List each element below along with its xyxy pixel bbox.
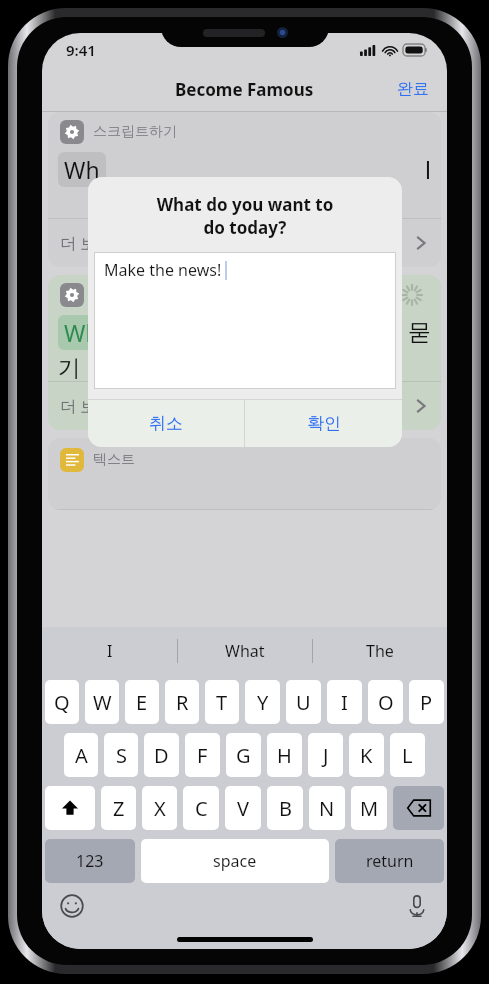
- staticText: 9:41: [66, 40, 96, 60]
- staticText: Wh: [64, 154, 100, 185]
- staticText: I: [341, 689, 348, 716]
- button[interactable]: S: [104, 733, 138, 777]
- staticText: K: [360, 742, 373, 769]
- button[interactable]: J: [308, 733, 343, 777]
- button[interactable]: H: [267, 733, 302, 777]
- staticText: 더 보기: [60, 232, 113, 254]
- staticText: F: [197, 742, 208, 769]
- button[interactable]: G: [226, 733, 261, 777]
- staticText: 확인: [307, 413, 341, 434]
- button[interactable]: Backspace: [393, 786, 444, 830]
- staticText: 완료: [397, 79, 429, 99]
- staticText: 더 보기: [60, 395, 113, 417]
- button[interactable]: F: [185, 733, 220, 777]
- staticText: L: [402, 742, 413, 769]
- staticText: Wh: [64, 317, 100, 348]
- staticText: R: [176, 689, 189, 716]
- staticText: B: [279, 795, 292, 822]
- button[interactable]: 완료: [379, 71, 447, 107]
- staticText: O: [378, 689, 394, 716]
- staticText: V: [237, 795, 249, 822]
- button[interactable]: return: [335, 839, 444, 883]
- button[interactable]: V: [225, 786, 261, 830]
- staticText: N: [319, 795, 335, 822]
- button[interactable]: I: [42, 627, 177, 674]
- button[interactable]: What: [178, 627, 312, 674]
- staticText: 123: [76, 850, 104, 872]
- button[interactable]: B: [267, 786, 303, 830]
- button[interactable]: L: [390, 733, 425, 777]
- staticText: M: [360, 795, 379, 822]
- button[interactable]: E: [125, 680, 159, 724]
- button[interactable]: Emoji: [56, 890, 88, 922]
- staticText: H: [277, 742, 292, 769]
- button[interactable]: T: [205, 680, 239, 724]
- button[interactable]: Shift: [45, 786, 95, 830]
- staticText: Q: [54, 689, 70, 716]
- staticText: return: [366, 850, 414, 872]
- staticText: 취소: [149, 413, 183, 434]
- button[interactable]: X: [142, 786, 177, 830]
- button[interactable]: space: [141, 839, 329, 883]
- button[interactable]: O: [368, 680, 403, 724]
- staticText: The: [366, 640, 394, 662]
- staticText: U: [296, 689, 311, 716]
- staticText: Make the news!: [104, 259, 222, 281]
- staticText: 스크립트하기: [93, 286, 177, 304]
- button[interactable]: A: [64, 733, 98, 777]
- button[interactable]: N: [309, 786, 345, 830]
- button[interactable]: 확인: [245, 400, 402, 447]
- staticText: T: [216, 689, 228, 716]
- button[interactable]: 스크립트하기: [48, 112, 441, 267]
- button[interactable]: C: [183, 786, 219, 830]
- button[interactable]: I: [327, 680, 362, 724]
- staticText: 기: [58, 354, 81, 381]
- button[interactable]: R: [165, 680, 199, 724]
- button[interactable]: Z: [101, 786, 136, 830]
- button[interactable]: 취소: [88, 400, 244, 447]
- button[interactable]: Dictation: [401, 890, 433, 922]
- staticText: C: [195, 795, 208, 822]
- staticText: A: [75, 742, 88, 769]
- staticText: W: [93, 689, 112, 716]
- staticText: What: [225, 640, 265, 662]
- staticText: S: [116, 742, 127, 769]
- staticText: X: [154, 795, 166, 822]
- button[interactable]: 텍스트: [48, 438, 441, 510]
- staticText: G: [236, 742, 251, 769]
- staticText: D: [154, 742, 169, 769]
- staticText: What do you want to do today?: [102, 193, 388, 239]
- staticText: 묻: [408, 318, 431, 347]
- button[interactable]: M: [351, 786, 387, 830]
- staticText: Z: [113, 795, 125, 822]
- button[interactable]: K: [349, 733, 384, 777]
- button[interactable]: W: [85, 680, 119, 724]
- button[interactable]: Q: [45, 680, 79, 724]
- staticText: J: [323, 742, 329, 769]
- staticText: E: [136, 689, 148, 716]
- button[interactable]: The: [313, 627, 447, 674]
- staticText: 스크립트하기: [93, 123, 177, 141]
- staticText: Y: [257, 689, 269, 716]
- staticText: Become Famous: [175, 78, 314, 101]
- staticText: 텍스트: [93, 451, 135, 469]
- staticText: I: [107, 640, 113, 662]
- staticText: space: [213, 850, 257, 872]
- staticText: P: [420, 689, 433, 716]
- button[interactable]: 스크립트하기: [48, 275, 441, 430]
- button[interactable]: Y: [245, 680, 280, 724]
- staticText: l: [425, 154, 431, 185]
- button[interactable]: 123: [45, 839, 135, 883]
- button[interactable]: D: [144, 733, 179, 777]
- button[interactable]: P: [409, 680, 444, 724]
- button[interactable]: U: [286, 680, 321, 724]
